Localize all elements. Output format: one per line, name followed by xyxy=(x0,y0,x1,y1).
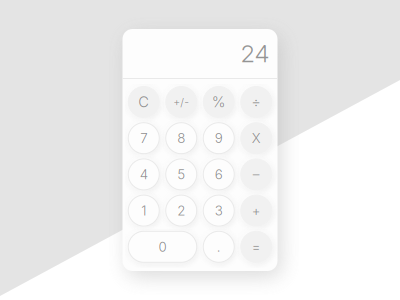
button[interactable]: 8 xyxy=(166,123,197,154)
button[interactable]: 4 xyxy=(128,159,159,190)
button[interactable]: 0 xyxy=(128,231,197,262)
staticText: 2 xyxy=(177,202,185,219)
staticText: 6 xyxy=(215,166,223,182)
staticText: + xyxy=(252,202,261,219)
staticText: = xyxy=(252,239,261,255)
button[interactable]: = xyxy=(241,231,272,262)
staticText: 5 xyxy=(177,166,185,182)
button[interactable]: ÷ xyxy=(241,86,272,117)
button[interactable]: 9 xyxy=(203,123,234,154)
button[interactable]: – xyxy=(241,159,272,190)
staticText: ÷ xyxy=(251,93,261,111)
staticText: 7 xyxy=(140,130,147,146)
button[interactable]: 1 xyxy=(128,195,159,226)
button[interactable]: 3 xyxy=(203,195,234,226)
staticText: +/- xyxy=(173,95,189,108)
button[interactable]: X xyxy=(241,123,272,154)
button[interactable]: + xyxy=(241,195,272,226)
staticText: % xyxy=(212,93,226,111)
button[interactable]: % xyxy=(203,86,234,117)
button[interactable]: . xyxy=(203,231,234,262)
staticText: 9 xyxy=(215,130,223,146)
staticText: 1 xyxy=(141,202,146,219)
staticText: . xyxy=(217,239,221,255)
button[interactable]: C xyxy=(128,86,159,117)
button[interactable]: 7 xyxy=(128,123,159,154)
button[interactable]: 2 xyxy=(166,195,197,226)
staticText: 24 xyxy=(240,39,269,68)
staticText: C xyxy=(138,93,149,111)
button[interactable]: 6 xyxy=(203,159,234,190)
staticText: – xyxy=(253,166,260,182)
staticText: X xyxy=(252,130,261,146)
staticText: 8 xyxy=(177,130,185,146)
staticText: 4 xyxy=(140,166,148,182)
button[interactable]: +/- xyxy=(166,86,197,117)
staticText: 0 xyxy=(158,239,166,255)
staticText: 3 xyxy=(215,202,223,219)
button[interactable]: 5 xyxy=(166,159,197,190)
